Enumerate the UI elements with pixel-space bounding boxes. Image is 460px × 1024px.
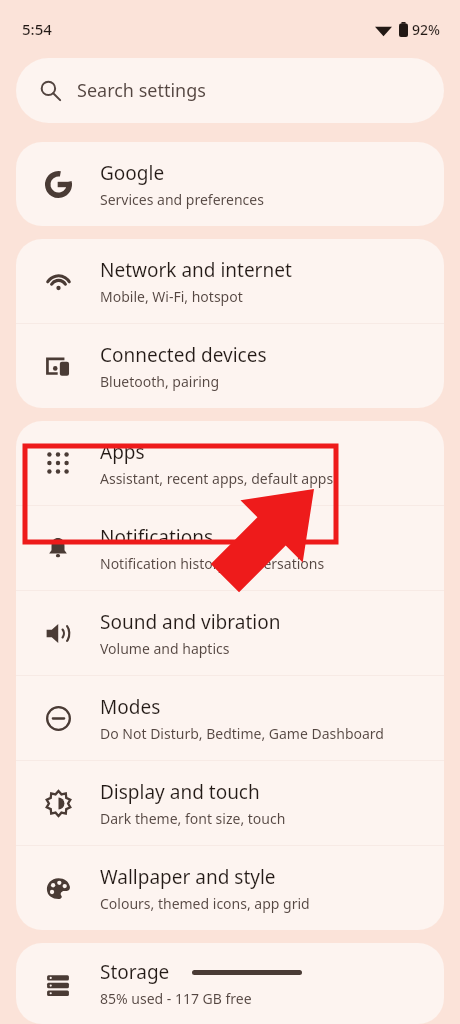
staticText: Mobile, Wi-Fi, hotspot <box>100 287 243 306</box>
button[interactable]: Modes <box>16 676 444 760</box>
button[interactable]: Storage <box>16 943 444 1024</box>
staticText: Storage <box>100 959 170 985</box>
staticText: Assistant, recent apps, default apps <box>100 469 334 488</box>
staticText: Dark theme, font size, touch <box>100 809 286 828</box>
staticText: Notification history, conversations <box>100 554 325 573</box>
staticText: 92% <box>412 20 440 39</box>
staticText: Modes <box>100 694 161 720</box>
staticText: Bluetooth, pairing <box>100 372 220 391</box>
staticText: Notifications <box>100 524 214 550</box>
staticText: 5:54 <box>22 19 52 39</box>
staticText: Search settings <box>77 78 206 103</box>
staticText: 85% used - 117 GB free <box>100 989 252 1008</box>
button[interactable]: Wallpaper and style <box>16 846 444 930</box>
button[interactable]: Sound and vibration <box>16 591 444 675</box>
staticText: Volume and haptics <box>100 639 230 658</box>
staticText: Sound and vibration <box>100 609 281 635</box>
staticText: Connected devices <box>100 342 267 368</box>
staticText: Wallpaper and style <box>100 864 276 890</box>
staticText: Google <box>100 160 165 186</box>
staticText: Apps <box>100 439 145 465</box>
staticText: Display and touch <box>100 779 260 805</box>
staticText: Colours, themed icons, app grid <box>100 894 310 913</box>
button[interactable]: Search settings <box>16 58 444 123</box>
staticText: Do Not Disturb, Bedtime, Game Dashboard <box>100 724 384 743</box>
button[interactable]: Connected devices <box>16 324 444 408</box>
button[interactable]: Display and touch <box>16 761 444 845</box>
button[interactable]: Network and internet <box>16 239 444 323</box>
staticText: Services and preferences <box>100 190 264 209</box>
button[interactable]: Apps <box>16 421 444 505</box>
button[interactable]: Google <box>16 142 444 226</box>
button[interactable]: Notifications <box>16 506 444 590</box>
staticText: Network and internet <box>100 257 292 283</box>
